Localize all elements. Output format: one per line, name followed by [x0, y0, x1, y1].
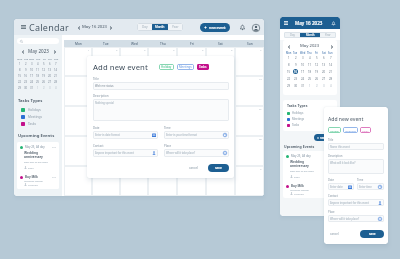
button[interactable]: Tasks: [360, 127, 371, 133]
button[interactable]: 4: [35, 61, 41, 67]
button[interactable]: 3: [206, 166, 235, 196]
button[interactable]: Day: [137, 23, 152, 31]
button[interactable]: 19: [177, 106, 206, 136]
button[interactable]: 1: [35, 85, 41, 91]
button[interactable]: 5: [177, 47, 206, 76]
button[interactable]: 1: [17, 61, 23, 67]
button[interactable]: 26: [41, 79, 47, 85]
button[interactable]: 1: [306, 82, 313, 89]
button[interactable]: 8: [64, 76, 92, 106]
button[interactable]: Meetings: [287, 116, 333, 122]
button[interactable]: 29: [64, 166, 92, 196]
button[interactable]: 26: [313, 75, 320, 82]
button[interactable]: 18: [148, 106, 177, 136]
button[interactable]: 2: [313, 82, 320, 89]
button[interactable]: 10: [299, 61, 306, 68]
button[interactable]: 3: [320, 82, 327, 89]
button[interactable]: Tasks: [197, 64, 209, 70]
button[interactable]: 24: [29, 79, 35, 85]
button[interactable]: 19: [313, 68, 320, 75]
button[interactable]: Holidays: [287, 110, 333, 116]
button[interactable]: save: [360, 230, 384, 238]
button[interactable]: cancel: [186, 164, 201, 172]
button[interactable]: 26: [177, 136, 206, 166]
button[interactable]: 17: [299, 68, 306, 75]
button[interactable]: 12: [41, 67, 47, 73]
button[interactable]: Next month: [329, 44, 334, 49]
button[interactable]: 4: [148, 47, 177, 76]
button[interactable]: 15: [64, 106, 92, 136]
button[interactable]: Holidays: [14, 106, 62, 113]
button[interactable]: 2: [23, 61, 29, 67]
button[interactable]: 19: [41, 73, 47, 79]
button[interactable]: Year: [168, 23, 183, 31]
button[interactable]: 21: [327, 68, 334, 75]
button[interactable]: May 25, All day: [17, 142, 59, 172]
button[interactable]: 9: [292, 61, 299, 68]
button[interactable]: 2: [92, 47, 120, 76]
button[interactable]: Tasks: [287, 122, 333, 128]
button[interactable]: 27: [206, 136, 235, 166]
button[interactable]: Search: [17, 38, 59, 44]
button[interactable]: Holiday: [159, 64, 174, 70]
button[interactable]: 22: [286, 75, 292, 82]
button[interactable]: 21: [235, 106, 264, 136]
button[interactable]: Month: [152, 23, 168, 31]
button[interactable]: 16: [23, 73, 29, 79]
button[interactable]: 1: [64, 47, 92, 76]
button[interactable]: 20: [206, 106, 235, 136]
button[interactable]: 2: [41, 85, 47, 91]
button[interactable]: Profile: [251, 23, 260, 32]
button[interactable]: 3: [120, 47, 148, 76]
button[interactable]: 31: [29, 85, 35, 91]
button[interactable]: 9: [23, 67, 29, 73]
button[interactable]: Previous month: [20, 49, 25, 54]
button[interactable]: 28: [53, 79, 59, 85]
button[interactable]: 24: [120, 136, 148, 166]
button[interactable]: 14: [235, 76, 264, 106]
button[interactable]: Enter in your time format: [164, 131, 229, 139]
button[interactable]: 23: [292, 75, 299, 82]
button[interactable]: May 25, All day: [283, 151, 337, 181]
button[interactable]: 21: [53, 73, 59, 79]
button[interactable]: 28: [327, 75, 334, 82]
button[interactable]: 31: [120, 166, 148, 196]
button[interactable]: 10: [29, 67, 35, 73]
button[interactable]: 7: [53, 61, 59, 67]
button[interactable]: save: [208, 164, 229, 172]
button[interactable]: 24: [299, 75, 306, 82]
button[interactable]: 31: [299, 82, 306, 89]
button[interactable]: Year: [320, 32, 336, 38]
button[interactable]: 15: [17, 73, 23, 79]
button[interactable]: 4: [306, 54, 313, 61]
button[interactable]: What will it look like?: [328, 159, 384, 174]
button[interactable]: 30: [23, 85, 29, 91]
button[interactable]: 11: [148, 76, 177, 106]
button[interactable]: 4: [327, 82, 334, 89]
button[interactable]: 23: [23, 79, 29, 85]
button[interactable]: 3: [299, 54, 306, 61]
button[interactable]: 3: [47, 85, 53, 91]
button[interactable]: 16: [292, 68, 299, 75]
button[interactable]: Day: [284, 32, 300, 38]
button[interactable]: Buy Milk: [283, 181, 337, 198]
button[interactable]: 18: [35, 73, 41, 79]
button[interactable]: cancel: [328, 230, 341, 238]
button[interactable]: 4: [235, 166, 264, 196]
button[interactable]: Menu: [19, 23, 27, 31]
button[interactable]: 20: [320, 68, 327, 75]
button[interactable]: Wish me status: [93, 82, 229, 90]
button[interactable]: 5: [313, 54, 320, 61]
button[interactable]: 25: [306, 75, 313, 82]
button[interactable]: 18: [306, 68, 313, 75]
button[interactable]: 22: [17, 79, 23, 85]
button[interactable]: 16: [92, 106, 120, 136]
button[interactable]: Next month: [52, 49, 57, 54]
button[interactable]: 6: [320, 54, 327, 61]
button[interactable]: Where will it take place?: [164, 149, 229, 157]
button[interactable]: Nothing special: [93, 99, 229, 121]
button[interactable]: 29: [17, 85, 23, 91]
button[interactable]: 15: [286, 68, 292, 75]
button[interactable]: Month: [300, 32, 320, 38]
button[interactable]: 6: [47, 61, 53, 67]
